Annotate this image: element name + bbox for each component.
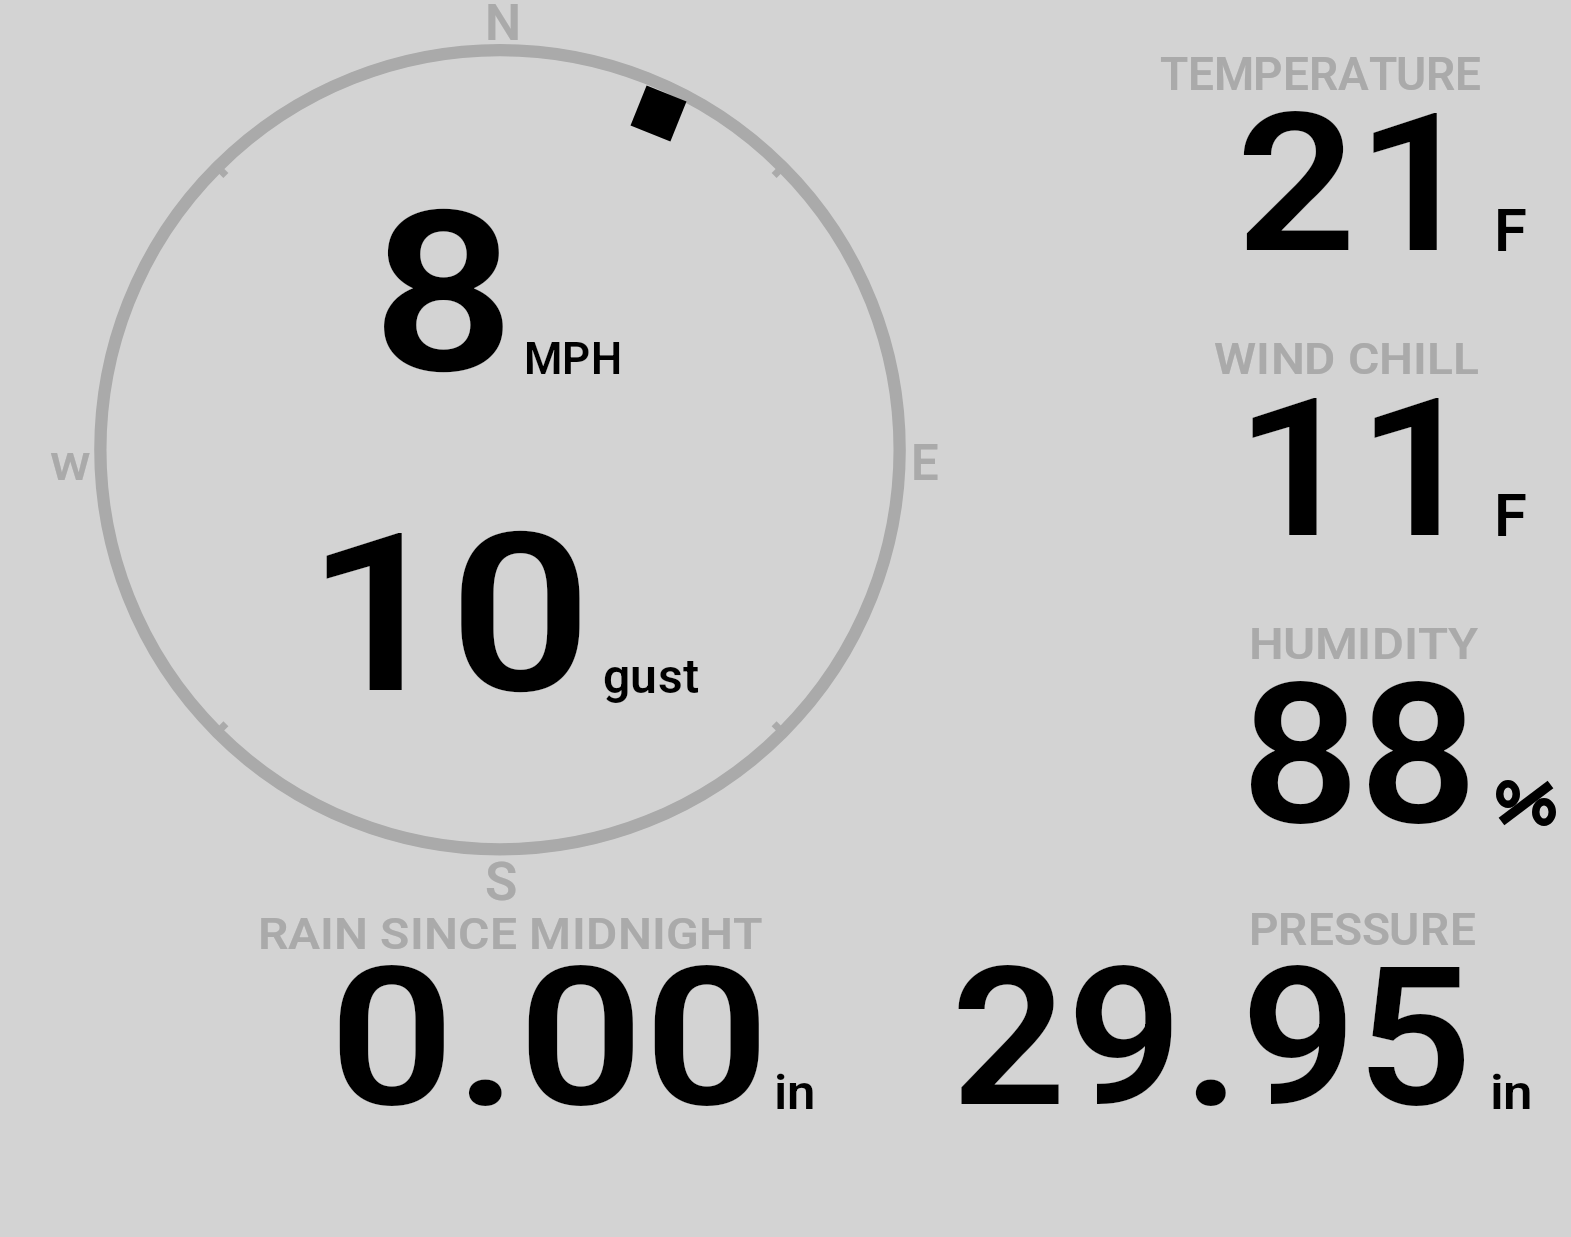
button[interactable]: Rain since midnight (230, 890, 830, 1135)
button[interactable]: Temperature (1140, 30, 1571, 290)
other: Wind direction (630, 85, 686, 141)
button[interactable]: Wind chill (1140, 310, 1571, 570)
button[interactable]: Wind speed and direction (60, 10, 940, 890)
button[interactable]: Humidity (1140, 595, 1571, 855)
button[interactable]: Pressure (900, 885, 1571, 1135)
